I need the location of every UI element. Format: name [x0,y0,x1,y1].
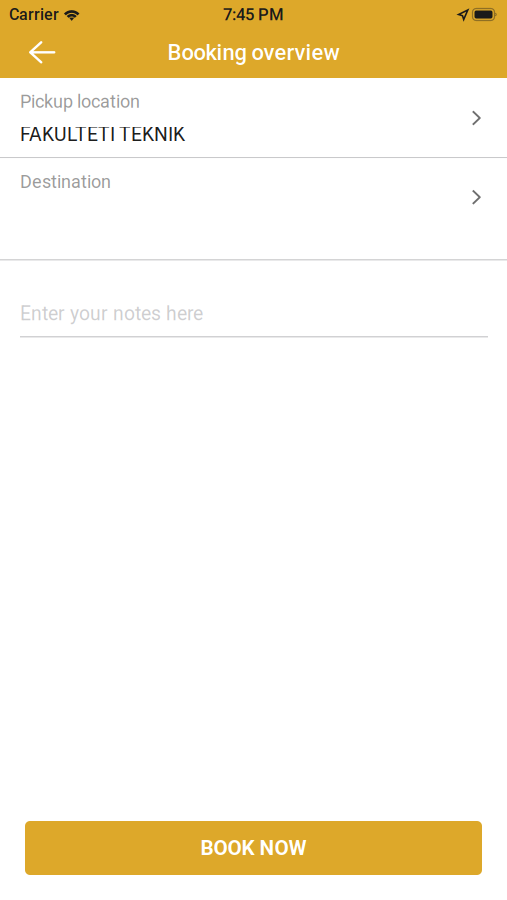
staticText: Booking overview [167,40,339,65]
staticText: Enter your notes here [20,302,203,325]
staticText: BOOK NOW [200,836,306,860]
staticText: 7:45 PM [223,5,284,24]
staticText: Pickup location [20,91,140,112]
staticText: Carrier [9,5,59,24]
staticText: FAKULTETI TEKNIK [20,123,185,146]
button[interactable]: BOOK NOW [25,821,482,875]
button[interactable]: Pickup location [0,78,507,157]
button[interactable]: Destination [0,158,507,259]
staticText: Destination [20,171,111,192]
button[interactable]: Back [0,29,71,78]
